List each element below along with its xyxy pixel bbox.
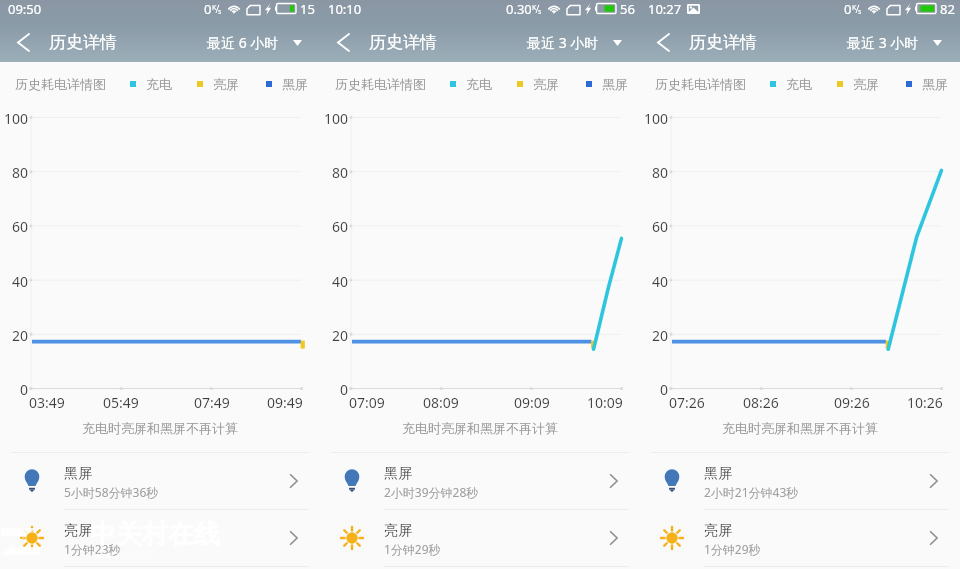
- staticText: 0: [640, 380, 668, 399]
- staticText: 黑屏: [384, 465, 412, 483]
- staticText: 亮屏: [533, 76, 559, 92]
- staticText: 80: [320, 163, 348, 182]
- button[interactable]: 返回: [640, 25, 686, 59]
- staticText: 最近 3 小时: [527, 33, 599, 52]
- staticText: 40: [0, 272, 28, 291]
- staticText: 0: [0, 380, 28, 399]
- staticText: 03:49: [29, 393, 65, 412]
- staticText: 黑屏: [64, 465, 92, 483]
- staticText: 最近 3 小时: [847, 33, 919, 52]
- staticText: s: [218, 7, 222, 17]
- staticText: 40: [640, 272, 668, 291]
- button[interactable]: 亮屏: [640, 510, 960, 566]
- staticText: www.zol.com.cn: [95, 549, 156, 560]
- staticText: 05:49: [103, 393, 139, 412]
- staticText: 黑屏: [602, 76, 628, 92]
- button[interactable]: 黑屏: [0, 453, 320, 509]
- staticText: 20: [320, 326, 348, 345]
- staticText: 最近 6 小时: [207, 33, 279, 52]
- staticText: 0: [320, 380, 348, 399]
- button[interactable]: 黑屏: [320, 453, 640, 509]
- staticText: 1分钟29秒: [384, 541, 441, 557]
- button[interactable]: 返回: [0, 25, 46, 59]
- staticText: 80: [0, 163, 28, 182]
- staticText: s: [858, 7, 862, 17]
- staticText: 100: [320, 109, 348, 128]
- staticText: 10:26: [907, 393, 943, 412]
- staticText: 82: [940, 0, 955, 17]
- staticText: 20: [640, 326, 668, 345]
- staticText: 100: [0, 109, 28, 128]
- staticText: 5小时58分钟36秒: [64, 484, 159, 500]
- staticText: 09:49: [267, 393, 303, 412]
- button[interactable]: 黑屏: [640, 453, 960, 509]
- staticText: 0.30: [506, 0, 532, 17]
- button[interactable]: 亮屏: [0, 510, 320, 566]
- button[interactable]: 最近 3 小时: [519, 27, 640, 58]
- staticText: K: [852, 3, 857, 13]
- staticText: 07:49: [194, 393, 230, 412]
- staticText: 1分钟29秒: [704, 541, 761, 557]
- staticText: 充电: [786, 76, 812, 92]
- staticText: 15: [300, 0, 315, 17]
- staticText: 历史耗电详情图: [335, 76, 426, 92]
- staticText: 09:50: [8, 0, 42, 17]
- staticText: 60: [640, 217, 668, 236]
- staticText: 亮屏: [384, 522, 412, 540]
- staticText: 10:27: [648, 0, 682, 17]
- staticText: 充电时亮屏和黑屏不再计算: [402, 420, 558, 436]
- staticText: s: [538, 7, 542, 17]
- staticText: 80: [640, 163, 668, 182]
- staticText: 历史详情: [369, 32, 437, 53]
- button[interactable]: 亮屏: [320, 510, 640, 566]
- button[interactable]: 最近 3 小时: [839, 27, 960, 58]
- staticText: 10:09: [587, 393, 623, 412]
- staticText: 20: [0, 326, 28, 345]
- staticText: 黑屏: [704, 465, 732, 483]
- button[interactable]: 最近 6 小时: [199, 27, 320, 58]
- staticText: 40: [320, 272, 348, 291]
- staticText: 充电时亮屏和黑屏不再计算: [722, 420, 878, 436]
- staticText: 亮屏: [213, 76, 239, 92]
- staticText: 100: [640, 109, 668, 128]
- staticText: 中关村在线: [90, 518, 220, 551]
- staticText: 56: [620, 0, 635, 17]
- staticText: 0: [204, 0, 212, 17]
- staticText: 历史详情: [689, 32, 757, 53]
- staticText: 0: [844, 0, 852, 17]
- staticText: 黑屏: [282, 76, 308, 92]
- staticText: 60: [0, 217, 28, 236]
- staticText: 2小时21分钟43秒: [704, 484, 799, 500]
- staticText: 历史详情: [49, 32, 117, 53]
- staticText: 充电: [466, 76, 492, 92]
- staticText: 08:26: [743, 393, 779, 412]
- staticText: 黑屏: [922, 76, 948, 92]
- staticText: 充电时亮屏和黑屏不再计算: [82, 420, 238, 436]
- staticText: 1分钟23秒: [64, 541, 121, 557]
- staticText: 07:09: [349, 393, 385, 412]
- staticText: K: [532, 3, 537, 13]
- staticText: 09:26: [834, 393, 870, 412]
- staticText: 历史耗电详情图: [655, 76, 746, 92]
- staticText: 08:09: [423, 393, 459, 412]
- staticText: 10:10: [328, 0, 362, 17]
- staticText: K: [212, 3, 217, 13]
- staticText: 充电: [146, 76, 172, 92]
- staticText: 2小时39分钟28秒: [384, 484, 479, 500]
- staticText: 亮屏: [704, 522, 732, 540]
- staticText: 亮屏: [64, 522, 92, 540]
- staticText: 亮屏: [853, 76, 879, 92]
- staticText: 历史耗电详情图: [15, 76, 106, 92]
- staticText: 60: [320, 217, 348, 236]
- button[interactable]: 返回: [320, 25, 366, 59]
- staticText: 09:09: [514, 393, 550, 412]
- staticText: 07:26: [669, 393, 705, 412]
